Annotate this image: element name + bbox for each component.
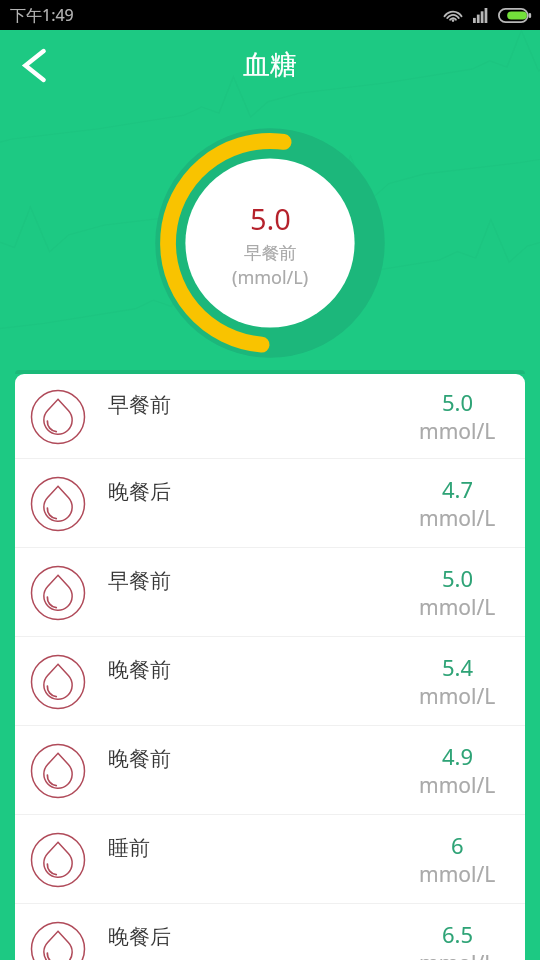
button[interactable]: 早餐前 bbox=[15, 548, 525, 637]
staticText: mmol/L bbox=[419, 682, 496, 711]
staticText: mmol/L bbox=[419, 417, 496, 446]
staticText: 下午1:49 bbox=[10, 4, 74, 26]
staticText: 6.5 bbox=[442, 919, 474, 949]
staticText: (mmol/L) bbox=[232, 265, 309, 290]
button[interactable]: 晚餐后 bbox=[15, 459, 525, 548]
staticText: 睡前 bbox=[108, 835, 150, 861]
staticText: 血糖 bbox=[243, 48, 297, 82]
staticText: 4.7 bbox=[442, 474, 474, 504]
staticText: 晚餐后 bbox=[108, 479, 171, 505]
staticText: 5.0 bbox=[250, 199, 291, 238]
staticText: 晚餐前 bbox=[108, 746, 171, 772]
staticText: 晚餐前 bbox=[108, 657, 171, 683]
staticText: 5.0 bbox=[442, 563, 474, 593]
staticText: 4.9 bbox=[442, 741, 474, 771]
staticText: mmol/L bbox=[419, 593, 496, 622]
button[interactable]: 晚餐前 bbox=[15, 637, 525, 726]
staticText: 5.0 bbox=[442, 387, 474, 417]
staticText: 早餐前 bbox=[108, 392, 171, 418]
button[interactable]: 晚餐前 bbox=[15, 726, 525, 815]
staticText: mmol/L bbox=[419, 504, 496, 533]
staticText: mmol/L bbox=[419, 949, 496, 960]
button[interactable]: 晚餐后 bbox=[15, 904, 525, 960]
button[interactable]: 睡前 bbox=[15, 815, 525, 904]
staticText: 早餐前 bbox=[108, 568, 171, 594]
staticText: 5.4 bbox=[442, 652, 474, 682]
staticText: 6 bbox=[451, 830, 464, 860]
staticText: 早餐前 bbox=[244, 242, 297, 264]
button[interactable]: Back bbox=[9, 39, 61, 91]
staticText: 晚餐后 bbox=[108, 924, 171, 950]
button[interactable]: 早餐前 bbox=[15, 374, 525, 459]
staticText: mmol/L bbox=[419, 771, 496, 800]
staticText: mmol/L bbox=[419, 860, 496, 889]
